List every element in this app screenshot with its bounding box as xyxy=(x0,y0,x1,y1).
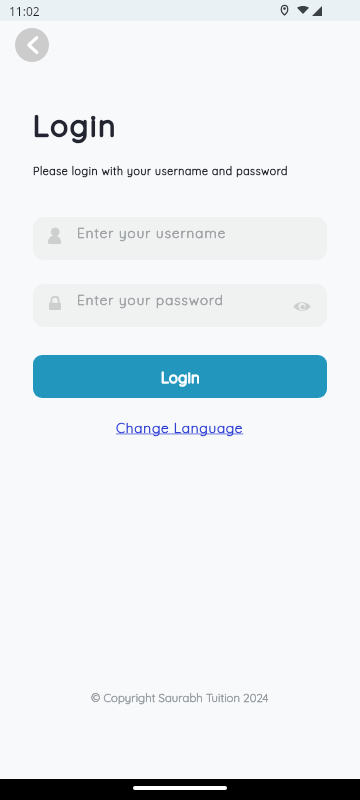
staticText: © Copyright Saurabh Tuition 2024 xyxy=(91,691,269,705)
button[interactable]: Enter your password xyxy=(33,284,327,327)
staticText: 11:02 xyxy=(9,3,40,19)
button[interactable]: Show password xyxy=(290,294,314,318)
staticText: Login xyxy=(161,368,200,386)
staticText: Change Language xyxy=(116,419,244,436)
staticText: Enter your username xyxy=(77,225,227,242)
staticText: Please login with your username and pass… xyxy=(33,164,288,177)
staticText: Login xyxy=(33,107,118,143)
button[interactable]: Change Language xyxy=(116,419,244,436)
staticText: Login xyxy=(161,368,200,386)
staticText: Change Language xyxy=(116,419,244,436)
staticText: Enter your password xyxy=(77,292,224,309)
button[interactable]: Login xyxy=(33,355,327,398)
staticText: © Copyright Saurabh Tuition 2024 xyxy=(91,691,269,705)
staticText: Login xyxy=(33,107,118,143)
staticText: Please login with your username and pass… xyxy=(33,164,288,177)
button[interactable]: Back xyxy=(15,28,49,62)
button[interactable]: Enter your username xyxy=(33,217,327,260)
staticText: Enter your password xyxy=(77,292,224,309)
staticText: Enter your username xyxy=(77,225,227,242)
